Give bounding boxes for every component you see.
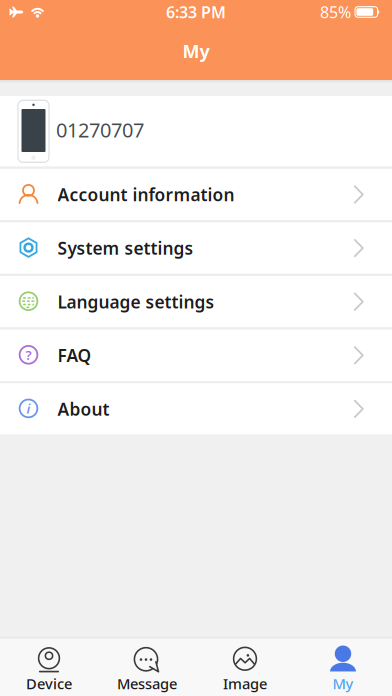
staticText: 6:33 PM xyxy=(166,1,226,23)
staticText: My xyxy=(332,674,353,693)
button[interactable]: System settings xyxy=(0,222,392,274)
staticText: i xyxy=(26,399,30,417)
button[interactable]: i xyxy=(0,383,392,435)
staticText: FAQ xyxy=(57,344,91,367)
staticText: About xyxy=(57,397,109,420)
staticText: 01270707 xyxy=(56,116,144,143)
staticText: Language settings xyxy=(57,290,214,313)
staticText: Account information xyxy=(57,183,234,206)
staticText: Image xyxy=(223,674,267,693)
staticText: ? xyxy=(25,346,31,364)
staticText: My xyxy=(182,39,209,63)
button[interactable]: Image xyxy=(196,638,294,696)
button[interactable]: Device xyxy=(0,638,98,696)
button[interactable]: ? xyxy=(0,330,392,381)
staticText: 85% xyxy=(320,1,351,23)
staticText: System settings xyxy=(57,237,193,260)
button[interactable]: My xyxy=(294,638,392,696)
staticText: Message xyxy=(117,674,177,693)
staticText: Device xyxy=(26,674,72,693)
button[interactable]: Message xyxy=(98,638,196,696)
button[interactable]: Language settings xyxy=(0,276,392,327)
button[interactable]: Account information xyxy=(0,169,392,220)
